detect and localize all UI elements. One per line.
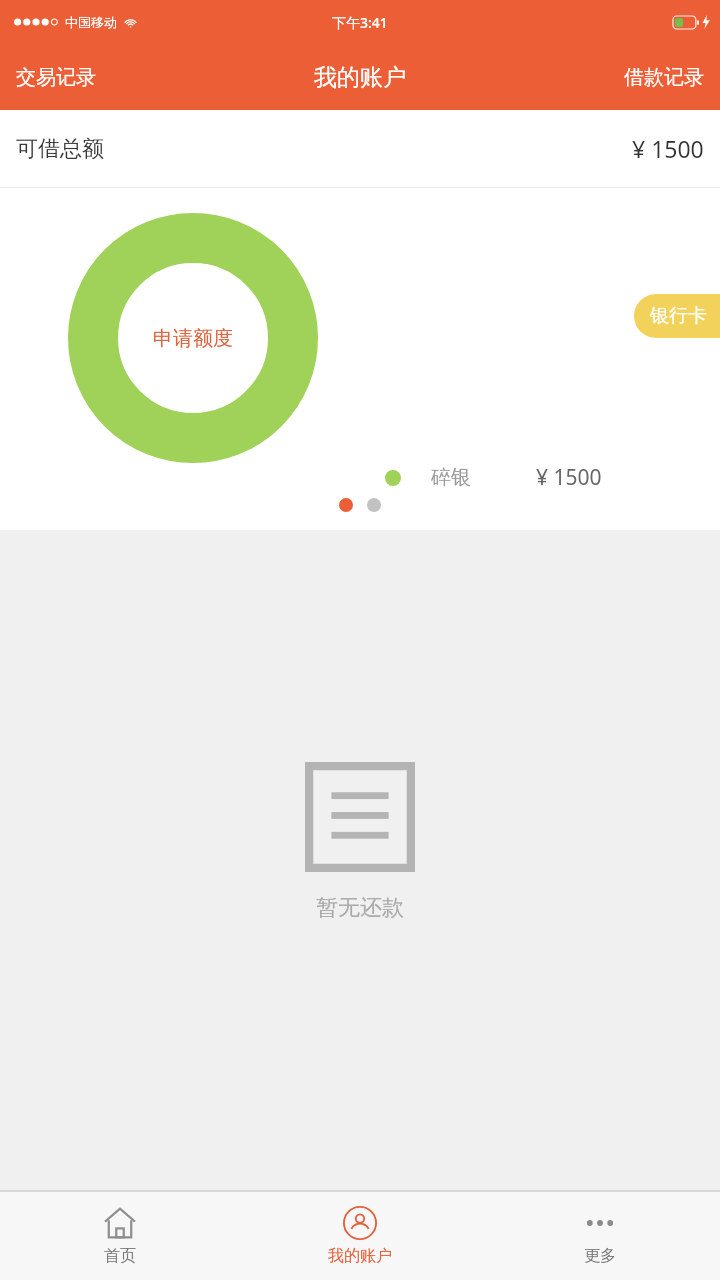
staticText: ¥ 1500	[536, 463, 602, 492]
staticText: 交易记录	[16, 65, 96, 90]
staticText: 我的账户	[328, 1246, 392, 1266]
staticText: 我的账户	[314, 63, 406, 92]
button[interactable]: My Account	[240, 1192, 480, 1280]
staticText: 碎银	[431, 465, 471, 490]
button[interactable]: Home	[0, 1192, 240, 1280]
staticText: 中国移动	[65, 14, 117, 30]
staticText: 暂无还款	[316, 894, 404, 922]
staticText: 首页	[104, 1246, 136, 1266]
staticText: 更多	[584, 1246, 616, 1266]
staticText: 申请额度	[153, 326, 233, 351]
staticText: ¥ 1500	[632, 133, 704, 164]
button[interactable]: 交易记录	[0, 44, 112, 110]
button[interactable]: 申请额度	[68, 213, 318, 463]
staticText: 借款记录	[624, 65, 704, 90]
button[interactable]: 可借总额	[0, 110, 720, 187]
button[interactable]: More	[480, 1192, 720, 1280]
staticText: 可借总额	[16, 135, 104, 163]
staticText: 下午3:41	[332, 13, 388, 32]
button[interactable]: 碎银	[385, 463, 602, 492]
button[interactable]: 借款记录	[608, 44, 720, 110]
staticText: 银行卡	[650, 304, 707, 328]
button[interactable]: 银行卡	[634, 294, 720, 338]
